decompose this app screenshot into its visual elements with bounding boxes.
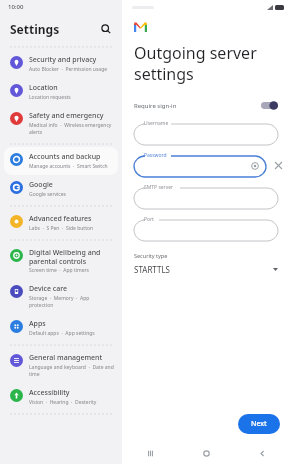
staticText: Accounts and backup — [29, 152, 101, 162]
button[interactable]: General management — [0, 348, 122, 383]
staticText: 10:00 — [8, 3, 24, 11]
staticText: Language and keyboard · Date and time — [29, 364, 114, 378]
button[interactable]: Location — [0, 78, 122, 106]
staticText: Accessibility — [29, 388, 70, 398]
button[interactable]: Digital Wellbeing and parental controls — [0, 243, 122, 279]
staticText: Username — [144, 120, 169, 127]
staticText: Default apps · App settings — [29, 330, 95, 337]
button[interactable]: back — [234, 442, 290, 464]
button[interactable]: Security and privacy — [0, 50, 122, 78]
button[interactable]: home — [178, 442, 234, 464]
button[interactable]: Require sign-in — [122, 99, 290, 112]
button[interactable]: SMTP server — [134, 184, 278, 210]
staticText: SMTP server — [144, 184, 174, 191]
button[interactable]: Device care — [0, 279, 122, 314]
button[interactable]: Clear — [270, 157, 286, 173]
staticText: Security type — [134, 252, 168, 259]
staticText: Device care — [29, 284, 68, 294]
button[interactable]: recents — [122, 442, 178, 464]
button[interactable]: Show password — [249, 160, 260, 171]
staticText: Advanced features — [29, 214, 92, 224]
staticText: Manage accounts · Smart Switch — [29, 163, 108, 170]
staticText: Medical info · Wireless emergency alerts — [29, 122, 112, 136]
staticText: Location — [29, 83, 58, 93]
button[interactable]: Port — [134, 216, 278, 242]
staticText: Safety and emergency — [29, 111, 104, 121]
staticText: Security and privacy — [29, 55, 97, 65]
button[interactable]: Search — [98, 21, 114, 37]
button[interactable]: Accounts and backup — [4, 147, 118, 175]
button[interactable]: Apps — [0, 314, 122, 342]
staticText: STARTTLS — [134, 264, 171, 275]
staticText: Settings — [10, 21, 60, 37]
button[interactable]: Safety and emergency — [0, 106, 122, 141]
button[interactable]: Next — [238, 414, 280, 434]
button[interactable]: Advanced features — [0, 209, 122, 237]
button[interactable]: Password — [134, 152, 266, 178]
button[interactable]: Require sign-in toggle — [261, 101, 278, 110]
staticText: Next — [251, 419, 267, 429]
staticText: Outgoing server settings — [134, 42, 257, 85]
staticText: Google — [29, 180, 53, 190]
staticText: Storage · Memory · App protection — [29, 295, 90, 309]
staticText: Vision · Hearing · Dexterity — [29, 399, 97, 406]
staticText: General management — [29, 353, 103, 363]
staticText: Port — [144, 216, 154, 223]
staticText: Screen time · App timers — [29, 267, 89, 274]
staticText: Password — [144, 152, 167, 159]
staticText: Digital Wellbeing and parental controls — [29, 248, 101, 266]
staticText: Apps — [29, 319, 46, 329]
button[interactable]: Accessibility — [0, 383, 122, 411]
staticText: Auto Blocker · Permission usage — [29, 66, 108, 73]
staticText: Labs · S Pen · Side button — [29, 225, 94, 232]
staticText: Location requests — [29, 94, 71, 101]
button[interactable]: Username — [134, 120, 278, 146]
staticText: Google services — [29, 191, 66, 198]
button[interactable]: Google — [0, 175, 122, 203]
button[interactable]: Security type — [122, 252, 290, 275]
staticText: Require sign-in — [134, 102, 177, 110]
